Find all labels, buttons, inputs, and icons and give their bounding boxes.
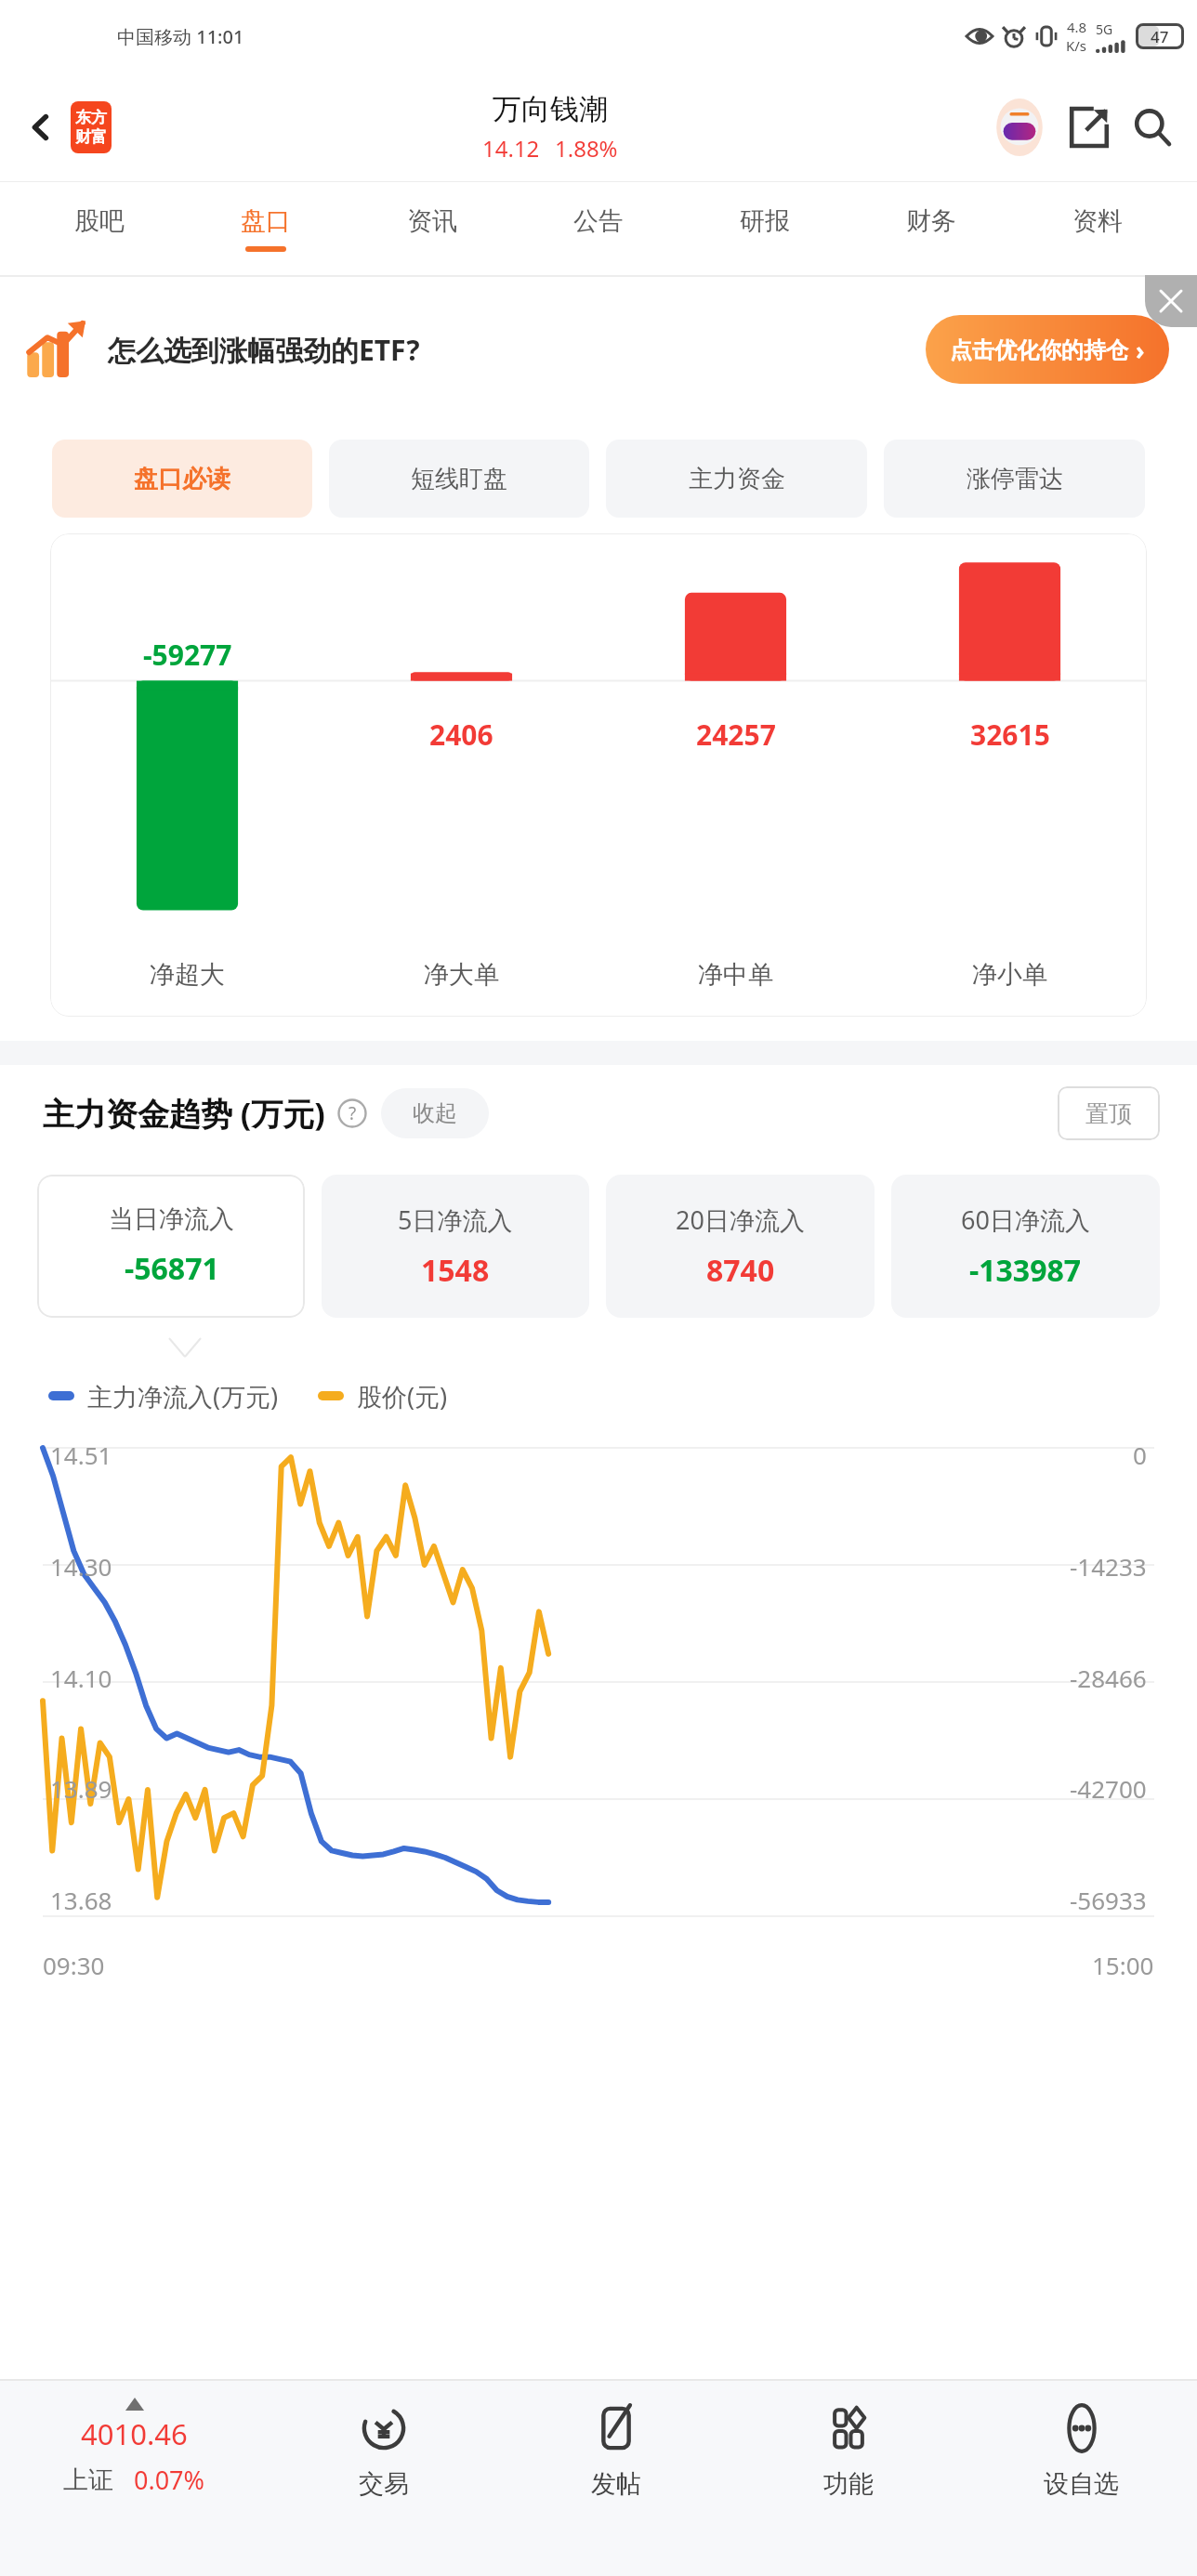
staticText: -42700 [1070, 1772, 1147, 1805]
staticText: -59277 [143, 636, 232, 674]
staticText: 交易 [359, 2468, 409, 2500]
staticText: 8740 [706, 1250, 775, 1291]
staticText: 公告 [573, 205, 624, 237]
staticText: 涨停雷达 [967, 464, 1063, 494]
button[interactable]: 股吧 [17, 182, 182, 275]
button[interactable]: 4010.46 [0, 2381, 268, 2576]
staticText: 股吧 [74, 205, 125, 237]
staticText: 财富 [75, 127, 107, 147]
staticText: 1.88% [555, 133, 618, 164]
button[interactable]: 交易 [268, 2381, 500, 2576]
staticText: 5日净流入 [398, 1203, 513, 1237]
staticText: 功能 [823, 2468, 874, 2500]
button[interactable]: 公告 [515, 182, 681, 275]
staticText: ? [349, 1101, 357, 1125]
staticText: 14.51 [50, 1439, 112, 1471]
staticText: 0.07% [134, 2463, 205, 2497]
staticText: 设自选 [1044, 2468, 1119, 2500]
button[interactable]: 点击优化你的持仓 [926, 315, 1169, 384]
staticText: 主力资金趋势 (万元) [43, 1092, 325, 1135]
staticText: -56871 [125, 1248, 219, 1289]
staticText: 47 [1151, 26, 1169, 47]
staticText: 24257 [696, 716, 776, 754]
button[interactable]: 当日净流入 [37, 1175, 305, 1318]
staticText: -14233 [1070, 1550, 1147, 1583]
staticText: 32615 [970, 716, 1050, 754]
button[interactable]: 主力资金 [606, 440, 867, 518]
staticText: 上证 [63, 2464, 113, 2496]
staticText: 0 [1133, 1439, 1147, 1471]
staticText: 收起 [413, 1099, 457, 1127]
staticText: 发帖 [591, 2468, 641, 2500]
staticText: 净小单 [972, 959, 1047, 991]
button[interactable]: 盘口 [182, 182, 349, 275]
staticText: 盘口必读 [134, 464, 230, 494]
staticText: 14.30 [50, 1550, 112, 1583]
staticText: 20日净流入 [676, 1203, 805, 1237]
button[interactable]: 收起 [381, 1088, 489, 1138]
staticText: 净超大 [150, 959, 225, 991]
button[interactable]: 5日净流入 [322, 1175, 589, 1318]
button[interactable]: 短线盯盘 [329, 440, 589, 518]
button[interactable]: 设自选 [965, 2381, 1197, 2576]
staticText: 点击优化你的持仓 [950, 336, 1128, 364]
staticText: 15:00 [1092, 1949, 1154, 1981]
button[interactable]: Help [336, 1097, 368, 1129]
staticText: 主力资金 [689, 464, 785, 494]
staticText: 置顶 [1085, 1099, 1132, 1128]
staticText: 主力净流入(万元) [87, 1379, 279, 1413]
staticText: 4.8 [1067, 18, 1087, 36]
button[interactable]: 60日净流入 [891, 1175, 1160, 1318]
button[interactable]: 资料 [1014, 182, 1180, 275]
button[interactable]: Search [1126, 101, 1178, 153]
staticText: 资讯 [407, 205, 457, 237]
button[interactable]: Back [15, 101, 67, 153]
button[interactable]: 资讯 [349, 182, 515, 275]
staticText: › [1136, 334, 1145, 366]
button[interactable]: 研报 [681, 182, 848, 275]
staticText: 净中单 [698, 959, 773, 991]
staticText: 股价(元) [357, 1379, 448, 1413]
button[interactable]: 发帖 [500, 2381, 732, 2576]
button[interactable]: 涨停雷达 [884, 440, 1145, 518]
staticText: 14.12 [482, 133, 540, 164]
staticText: 60日净流入 [961, 1203, 1090, 1237]
staticText: 短线盯盘 [411, 464, 507, 494]
button[interactable]: 20日净流入 [606, 1175, 875, 1318]
staticText: 财务 [906, 205, 956, 237]
staticText: 4010.46 [81, 2414, 188, 2453]
staticText: 1548 [421, 1250, 490, 1291]
button[interactable]: 东方财富 [71, 101, 112, 153]
button[interactable]: -59277 [50, 533, 1147, 1017]
staticText: 研报 [740, 205, 790, 237]
staticText: -56933 [1070, 1884, 1147, 1916]
staticText: 东方 [75, 108, 107, 127]
staticText: 资料 [1072, 205, 1123, 237]
staticText: 14.10 [50, 1662, 112, 1694]
staticText: 怎么选到涨幅强劲的ETF? [108, 331, 420, 369]
staticText: 2406 [429, 716, 493, 754]
staticText: -133987 [969, 1250, 1082, 1291]
button[interactable]: Share [1063, 101, 1115, 153]
staticText: 盘口 [241, 205, 291, 237]
staticText: 13.68 [50, 1884, 112, 1916]
staticText: K/s [1066, 36, 1087, 55]
staticText: 09:30 [43, 1949, 105, 1981]
staticText: 当日净流入 [109, 1203, 234, 1235]
button[interactable]: AI assistant [989, 97, 1050, 158]
button[interactable]: Close ad [1145, 275, 1197, 327]
staticText: 5G [1096, 20, 1113, 38]
staticText: -28466 [1070, 1662, 1147, 1694]
button[interactable]: 财务 [848, 182, 1014, 275]
staticText: 净大单 [424, 959, 499, 991]
button[interactable]: 功能 [732, 2381, 965, 2576]
staticText: 13.89 [50, 1772, 112, 1805]
staticText: 万向钱潮 [493, 91, 608, 127]
button[interactable]: 置顶 [1058, 1086, 1160, 1140]
staticText: 中国移动 11:01 [117, 24, 244, 49]
button[interactable]: 盘口必读 [52, 440, 312, 518]
